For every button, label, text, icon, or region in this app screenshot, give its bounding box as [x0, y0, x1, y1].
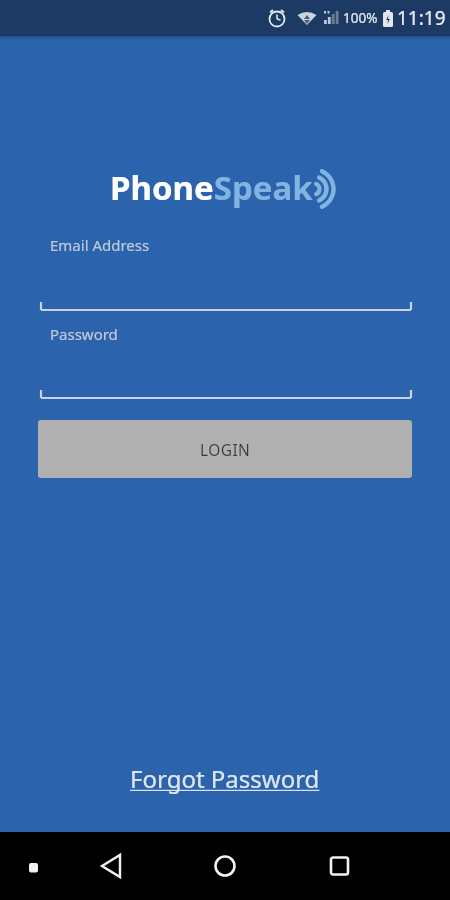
staticText: 11:19 — [397, 5, 446, 31]
staticText: 100% — [343, 9, 378, 27]
button[interactable]: Forgot Password — [130, 762, 320, 795]
button[interactable]: LOGIN — [38, 420, 412, 478]
staticText: Password — [50, 324, 118, 344]
staticText: LOGIN — [200, 439, 251, 460]
button[interactable] — [0, 832, 150, 900]
button[interactable] — [300, 832, 450, 900]
staticText: PhoneSpeak — [110, 165, 313, 210]
staticText: Email Address — [50, 235, 150, 255]
button[interactable] — [150, 832, 300, 900]
